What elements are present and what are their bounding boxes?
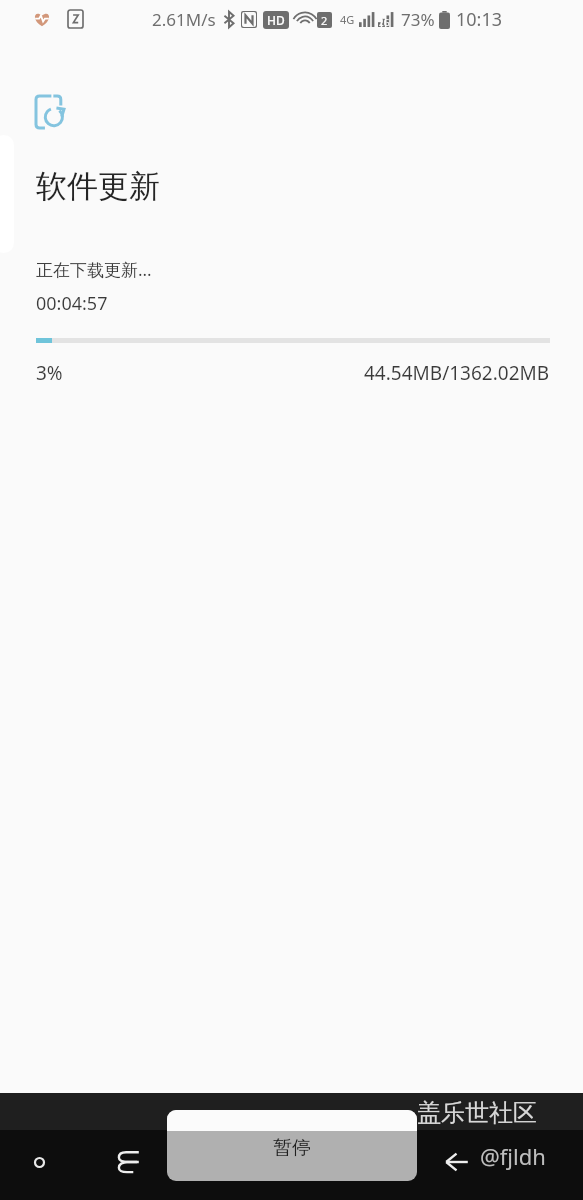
staticText: 3%	[36, 360, 63, 386]
staticText: 44.54MB/1362.02MB	[364, 360, 550, 386]
button[interactable]: Home	[99, 1133, 157, 1191]
staticText: 00:04:57	[36, 291, 108, 316]
staticText: 软件更新	[36, 167, 160, 206]
staticText: 73%	[401, 8, 435, 31]
staticText: HD	[267, 12, 285, 28]
staticText: 2	[321, 13, 328, 28]
staticText: 2.61M/s	[152, 8, 216, 31]
staticText: 10:13	[456, 7, 503, 32]
staticText: 盖乐世社区	[417, 1098, 537, 1128]
staticText: 正在下载更新...	[36, 258, 152, 281]
staticText: 2G	[379, 17, 390, 28]
staticText: 4G	[340, 12, 355, 27]
button[interactable]: 暂停	[167, 1110, 417, 1181]
staticText: 暂停	[273, 1136, 311, 1160]
button[interactable]: Back	[428, 1133, 486, 1191]
staticText: @fjldh	[480, 1141, 546, 1171]
button[interactable]: Recents	[10, 1133, 68, 1191]
